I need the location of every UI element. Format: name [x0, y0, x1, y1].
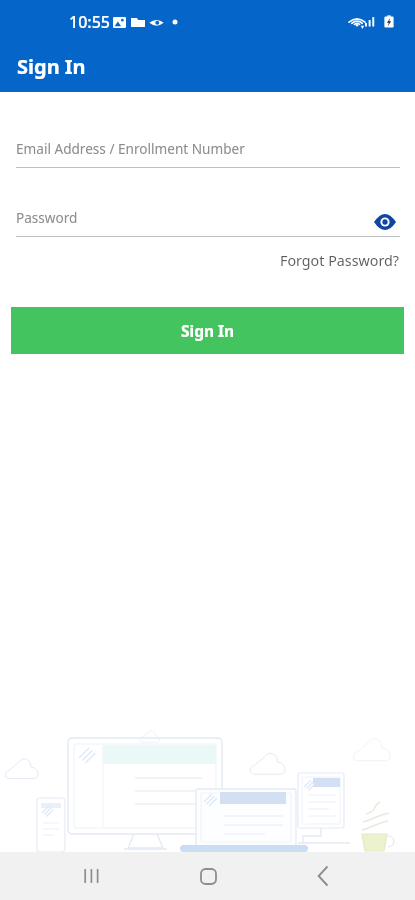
staticText: Email Address / Enrollment Number: [16, 139, 245, 158]
button[interactable]: Sign In: [11, 307, 404, 354]
staticText: Password: [16, 208, 78, 227]
staticText: 10:55: [69, 11, 110, 33]
button[interactable]: Home: [182, 852, 234, 900]
button[interactable]: Forgot Password?: [278, 249, 402, 272]
staticText: Sign In: [181, 320, 235, 341]
button[interactable]: Back: [297, 852, 349, 900]
button[interactable]: Recents: [66, 852, 118, 900]
staticText: Sign In: [17, 53, 86, 80]
button[interactable]: Show password: [372, 211, 398, 233]
